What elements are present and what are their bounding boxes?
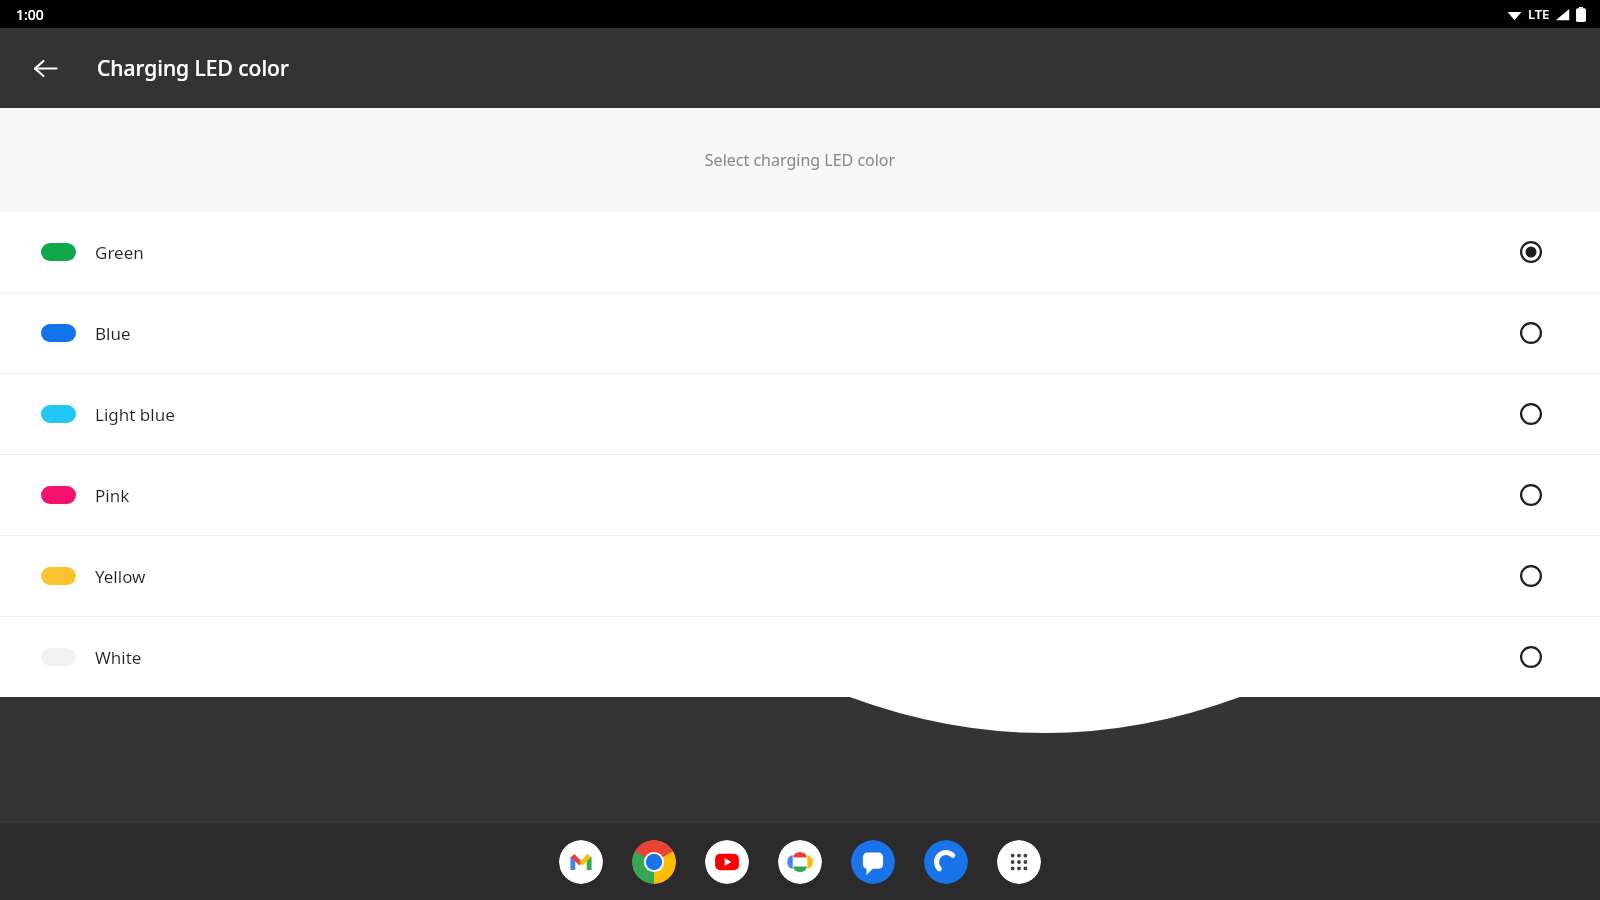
staticText: Green xyxy=(95,241,144,264)
staticText: LTE xyxy=(1528,5,1550,23)
button[interactable]: All apps xyxy=(997,840,1041,884)
button[interactable]: Blue xyxy=(1507,309,1555,357)
staticText: Select charging LED color xyxy=(0,149,1600,171)
button[interactable]: Light blue xyxy=(1507,390,1555,438)
button[interactable]: Phone xyxy=(924,840,968,884)
button[interactable]: Chrome xyxy=(632,840,676,884)
button[interactable]: Back xyxy=(21,44,69,92)
staticText: Yellow xyxy=(95,565,146,588)
staticText: Charging LED color xyxy=(97,54,289,83)
staticText: Light blue xyxy=(95,403,175,426)
button[interactable]: Pink xyxy=(1507,471,1555,519)
button[interactable]: Yellow xyxy=(1507,552,1555,600)
button[interactable]: Gmail xyxy=(559,840,603,884)
button[interactable]: Light blue xyxy=(0,374,1600,454)
staticText: White xyxy=(95,646,142,669)
button[interactable]: YouTube xyxy=(705,840,749,884)
staticText: Blue xyxy=(95,322,131,345)
button[interactable]: Blue xyxy=(0,293,1600,373)
staticText: Pink xyxy=(95,484,130,507)
button[interactable]: Green xyxy=(0,212,1600,292)
button[interactable]: Pink xyxy=(0,455,1600,535)
staticText: 1:00 xyxy=(16,5,44,24)
button[interactable]: Google Photos xyxy=(778,840,822,884)
button[interactable]: White xyxy=(0,617,1600,697)
button[interactable]: Messages xyxy=(851,840,895,884)
button[interactable]: Yellow xyxy=(0,536,1600,616)
button[interactable]: Green xyxy=(1507,228,1555,276)
button[interactable]: White xyxy=(1507,633,1555,681)
